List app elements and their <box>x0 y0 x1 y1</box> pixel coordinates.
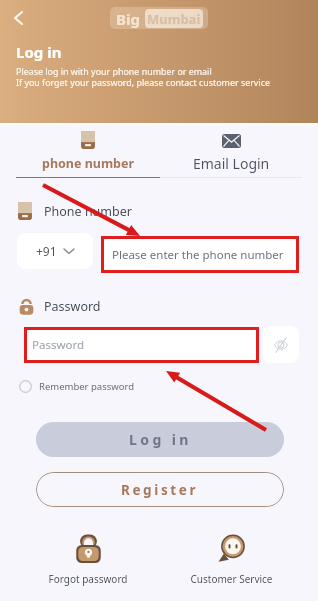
staticText: Register <box>121 481 199 499</box>
staticText: Phone number <box>44 203 132 220</box>
button[interactable]: Back <box>1 1 35 35</box>
staticText: Forgot password <box>48 572 128 586</box>
staticText: phone number <box>42 155 135 172</box>
staticText: Please log in with your phone number or … <box>16 65 212 77</box>
staticText: Log in <box>129 430 192 449</box>
staticText: Mumbai <box>147 10 201 28</box>
button[interactable]: Password <box>24 327 259 363</box>
button[interactable]: +91 <box>17 233 93 269</box>
staticText: Remember password <box>39 380 135 393</box>
staticText: Please enter the phone number <box>112 247 284 263</box>
button[interactable]: phone number <box>16 123 160 172</box>
staticText: Email Login <box>193 154 270 173</box>
button[interactable]: Remember password <box>19 380 135 393</box>
staticText: Password <box>32 337 85 353</box>
staticText: Password <box>44 298 101 315</box>
button[interactable]: Email Login <box>160 123 303 173</box>
staticText: Big <box>116 9 140 29</box>
button[interactable]: Register <box>36 472 284 507</box>
button[interactable]: Please enter the phone number <box>101 236 299 273</box>
staticText: Log in <box>16 42 62 62</box>
button[interactable]: Log in <box>36 422 284 457</box>
button[interactable]: Show password <box>263 326 299 363</box>
staticText: If you forget your password, please cont… <box>16 76 270 88</box>
staticText: +91 <box>36 243 57 259</box>
button[interactable]: Forgot password <box>48 534 128 586</box>
staticText: Customer Service <box>190 572 273 586</box>
button[interactable]: Customer Service <box>181 534 281 586</box>
